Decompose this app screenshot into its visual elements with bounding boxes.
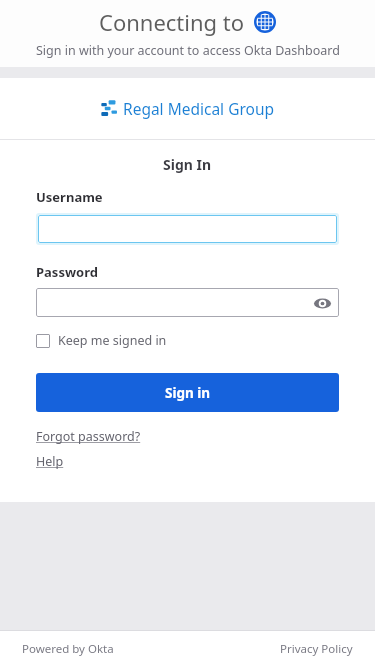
staticText: Powered by Okta [22,641,114,657]
staticText: Connecting to [99,7,245,37]
staticText: Forgot password? [36,428,141,445]
button[interactable] [38,215,337,243]
staticText: Sign in [165,384,211,402]
staticText: Keep me signed in [58,332,167,349]
button[interactable]: Forgot password? [36,428,141,445]
staticText: Sign In [163,155,212,174]
button[interactable]: Privacy Policy [280,641,353,657]
staticText: Help [36,453,64,470]
button[interactable]: Show password [312,293,332,313]
staticText: Regal Medical Group [123,98,275,119]
staticText: Sign in with your account to access Okta… [36,42,340,59]
staticText: Password [36,263,98,281]
button[interactable]: Show password [36,288,339,317]
staticText: Username [36,188,103,206]
staticText: Privacy Policy [280,641,353,657]
button[interactable]: Help [36,453,64,470]
button[interactable]: Powered by Okta [22,641,114,657]
button[interactable]: Keep me signed in [36,332,167,349]
button[interactable]: Sign in [36,373,339,412]
